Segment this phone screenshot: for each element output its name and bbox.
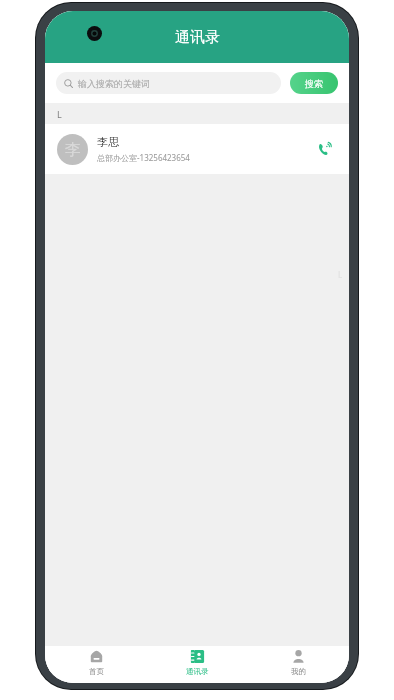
- staticText: 通讯录: [175, 28, 220, 47]
- staticText: 输入搜索的关键词: [78, 78, 150, 89]
- staticText: 搜索: [305, 78, 323, 89]
- staticText: 总部办公室-13256423654: [97, 152, 190, 163]
- staticText: L: [57, 108, 62, 120]
- button[interactable]: 我的: [248, 646, 349, 683]
- button[interactable]: 通讯录: [147, 646, 248, 683]
- button[interactable]: 搜索: [290, 72, 338, 94]
- staticText: 通讯录: [186, 667, 209, 676]
- staticText: 首页: [89, 667, 104, 676]
- staticText: 李: [65, 140, 81, 160]
- staticText: 我的: [291, 667, 306, 676]
- staticText: L: [338, 269, 343, 280]
- button[interactable]: 首页: [45, 646, 147, 683]
- staticText: 李思: [97, 135, 119, 149]
- button[interactable]: 输入搜索的关键词: [56, 72, 281, 94]
- button[interactable]: 李: [45, 124, 349, 174]
- button[interactable]: Call 李思: [311, 136, 337, 162]
